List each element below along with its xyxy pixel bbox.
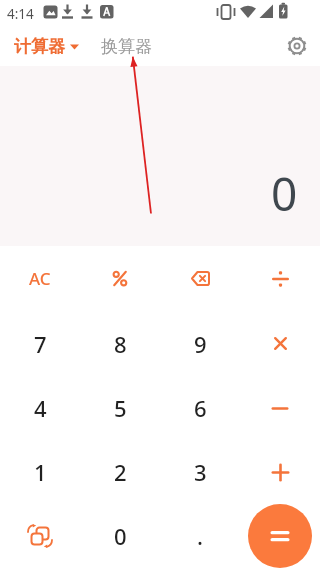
- staticText: 2: [114, 457, 127, 487]
- button[interactable]: [287, 36, 307, 56]
- button[interactable]: 7: [0, 311, 80, 376]
- staticText: .: [197, 521, 203, 551]
- button[interactable]: [240, 504, 320, 568]
- button[interactable]: [248, 504, 312, 568]
- button[interactable]: 6: [160, 376, 240, 440]
- button[interactable]: 5: [80, 376, 160, 440]
- staticText: 0: [114, 521, 127, 551]
- button[interactable]: [240, 376, 320, 440]
- button[interactable]: [80, 246, 160, 311]
- staticText: 换算器: [101, 36, 152, 57]
- staticText: 计算器: [14, 36, 65, 57]
- staticText: 6: [194, 393, 207, 423]
- button[interactable]: 换算器: [101, 36, 152, 57]
- staticText: 8: [114, 329, 127, 359]
- button[interactable]: AC: [0, 246, 80, 311]
- button[interactable]: 9: [160, 311, 240, 376]
- button[interactable]: 计算器: [14, 36, 79, 57]
- staticText: 3: [194, 457, 207, 487]
- button[interactable]: 8: [80, 311, 160, 376]
- staticText: AC: [29, 267, 51, 290]
- staticText: 5: [114, 393, 127, 423]
- staticText: 4:14: [7, 5, 34, 23]
- staticText: 9: [194, 329, 207, 359]
- button[interactable]: 4: [0, 376, 80, 440]
- button[interactable]: 3: [160, 440, 240, 504]
- staticText: 0: [271, 162, 298, 225]
- button[interactable]: 0: [80, 504, 160, 568]
- button[interactable]: .: [160, 504, 240, 568]
- button[interactable]: [160, 246, 240, 311]
- staticText: 7: [34, 329, 47, 359]
- button[interactable]: [240, 440, 320, 504]
- button[interactable]: [240, 246, 320, 311]
- button[interactable]: 2: [80, 440, 160, 504]
- staticText: 4: [34, 393, 47, 423]
- button[interactable]: [240, 311, 320, 376]
- button[interactable]: [0, 504, 80, 568]
- staticText: 1: [34, 457, 47, 487]
- button[interactable]: 1: [0, 440, 80, 504]
